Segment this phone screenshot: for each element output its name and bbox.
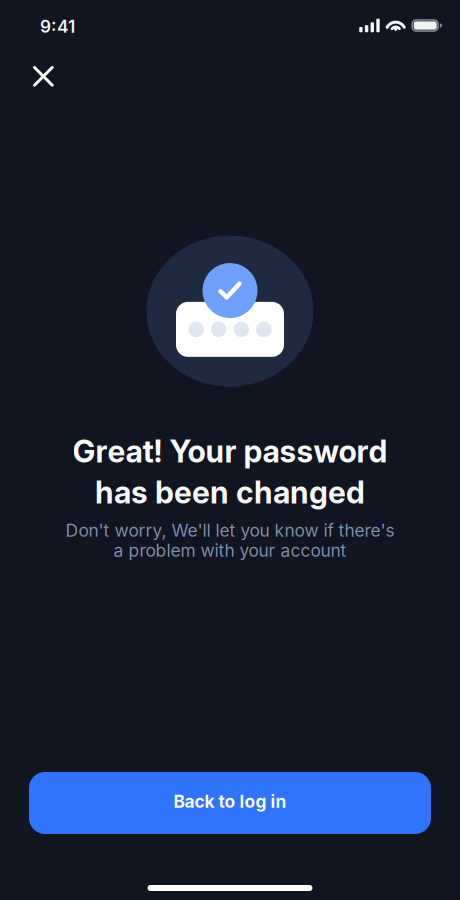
staticText: Great! Your password: [72, 433, 387, 470]
staticText: 9:41: [40, 16, 75, 37]
staticText: a problem with your account: [113, 540, 346, 561]
staticText: Don't worry, We'll let you know if there…: [65, 520, 394, 541]
button[interactable]: Back to log in: [29, 772, 431, 834]
staticText: Back to log in: [173, 791, 286, 812]
button[interactable]: Close: [22, 55, 65, 98]
staticText: has been changed: [95, 474, 365, 511]
